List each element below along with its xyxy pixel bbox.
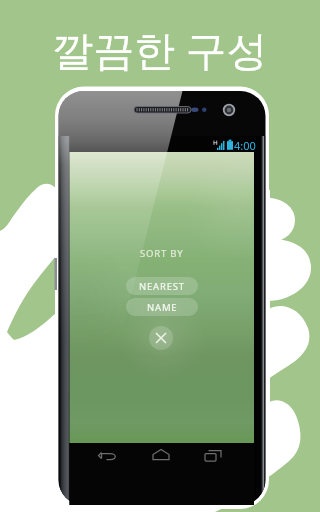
staticText: 4:00 xyxy=(234,138,256,153)
button[interactable]: NEAREST xyxy=(126,277,198,295)
button[interactable]: Close xyxy=(149,326,173,350)
staticText: SORT BY xyxy=(140,247,184,260)
staticText: NEAREST xyxy=(139,280,185,293)
staticText: 깔끔한 구성 xyxy=(52,21,268,77)
button[interactable]: NAME xyxy=(126,298,198,316)
staticText: NAME xyxy=(147,301,178,314)
